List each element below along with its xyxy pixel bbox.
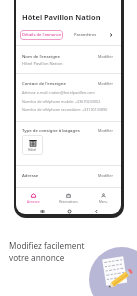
staticText: votre annonce	[9, 252, 65, 263]
staticText: Hôtel Pavillon Nation	[22, 12, 101, 22]
button[interactable]: Modifier	[98, 128, 114, 133]
button[interactable]: Récents	[38, 207, 46, 215]
staticText: Adresse e-mail: nation@hotelpavillon.com	[22, 90, 95, 95]
button[interactable]: Détails de l'annonce	[20, 30, 63, 40]
button[interactable]: Paramètres	[72, 30, 99, 40]
staticText: Paramètres	[74, 32, 97, 38]
staticText: Modifiez facilement	[9, 240, 85, 251]
button[interactable]: Menu	[86, 189, 121, 204]
staticText: Nom de l'enseigne	[22, 53, 98, 59]
staticText: Menu	[99, 200, 108, 204]
button[interactable]: Modifier	[98, 173, 114, 178]
button[interactable]: Hôtel	[22, 135, 43, 155]
button[interactable]: Modifier	[98, 54, 114, 59]
staticText: Adresse	[22, 172, 98, 178]
staticText: Modifier	[98, 128, 114, 133]
button[interactable]: Annonce	[16, 189, 51, 204]
staticText: Modifier	[98, 81, 114, 86]
staticText: Détails de l'annonce	[22, 32, 62, 38]
button[interactable]: Suivant	[106, 30, 116, 40]
staticText: Annonce	[27, 200, 40, 204]
staticText: Type de consigne à bagages	[22, 127, 98, 133]
button[interactable]: Retour	[92, 207, 100, 215]
staticText: Contact de l'enseigne	[22, 80, 98, 86]
staticText: Réservations	[59, 200, 78, 204]
button[interactable]: Réservations	[51, 189, 86, 204]
staticText: Numéro de téléphone secondaire: +3313013…	[22, 107, 108, 112]
staticText: Modifier	[98, 54, 114, 59]
staticText: Hôtel	[28, 148, 37, 152]
button[interactable]: Modifier	[98, 81, 114, 86]
staticText: Numéro de téléphone mobile: +33670233052	[22, 99, 101, 104]
button[interactable]: Accueil	[65, 207, 73, 215]
staticText: Modifier	[98, 173, 114, 178]
staticText: Hôtel Pavillon Nation	[22, 61, 63, 67]
